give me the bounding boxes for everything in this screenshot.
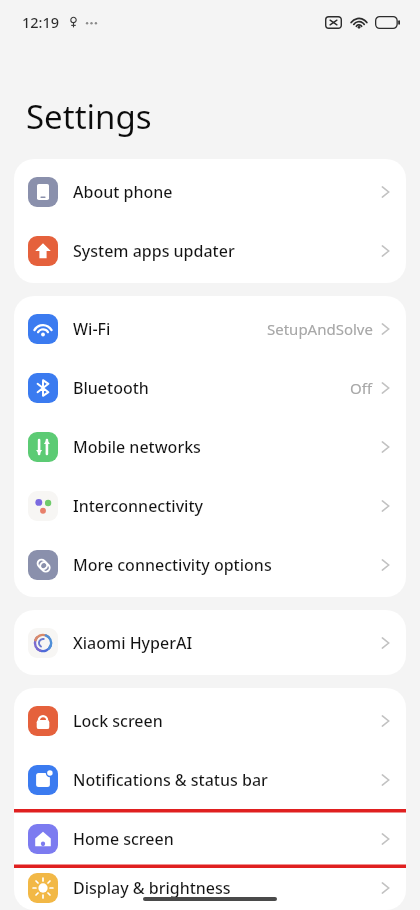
button[interactable]: Interconnectivity <box>14 476 406 535</box>
staticText: System apps updater <box>73 240 235 262</box>
staticText: Xiaomi HyperAI <box>73 632 193 654</box>
staticText: SetupAndSolve <box>267 319 373 339</box>
staticText: More connectivity options <box>73 554 272 576</box>
staticText: Off <box>350 378 373 398</box>
staticText: Mobile networks <box>73 436 201 458</box>
staticText: 12:19 <box>22 12 60 32</box>
staticText: Interconnectivity <box>73 495 203 517</box>
staticText: Settings <box>26 94 152 139</box>
staticText: About phone <box>73 181 173 203</box>
button[interactable]: Lock screen <box>14 691 406 750</box>
button[interactable]: More connectivity options <box>14 535 406 594</box>
button[interactable]: Notifications & status bar <box>14 750 406 809</box>
staticText: Bluetooth <box>73 377 149 399</box>
button[interactable]: Display & brightness <box>14 868 406 907</box>
button[interactable]: Mobile networks <box>14 417 406 476</box>
button[interactable]: About phone <box>14 162 406 221</box>
staticText: Notifications & status bar <box>73 769 268 791</box>
staticText: Lock screen <box>73 710 163 732</box>
button[interactable]: System apps updater <box>14 221 406 280</box>
button[interactable]: Wi-Fi <box>14 299 406 358</box>
button[interactable]: Xiaomi HyperAI <box>14 613 406 672</box>
staticText: Wi-Fi <box>73 318 111 340</box>
button[interactable]: Home screen <box>14 809 406 868</box>
staticText: Display & brightness <box>73 877 231 899</box>
button[interactable]: Bluetooth <box>14 358 406 417</box>
staticText: Home screen <box>73 828 174 850</box>
